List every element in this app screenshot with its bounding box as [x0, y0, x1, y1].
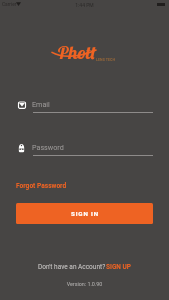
staticText: SIGN UP	[106, 263, 132, 271]
staticText: Forgot Password	[16, 182, 67, 190]
staticText: Don't have an Account?	[38, 263, 106, 271]
button[interactable]: SIGN UP	[106, 263, 132, 271]
other: Email	[18, 100, 26, 110]
other: Password	[18, 143, 25, 153]
staticText: SIGN IN	[71, 210, 99, 217]
staticText: Email	[32, 100, 50, 108]
staticText: Carrier	[2, 2, 17, 8]
staticText: LENS TECH	[96, 58, 116, 62]
staticText: 1:44 PM	[0, 2, 169, 8]
button[interactable]: Forgot Password	[16, 182, 67, 190]
staticText: Password	[32, 143, 64, 151]
staticText: Phott	[57, 40, 96, 63]
staticText: Version: 1.0.90	[0, 281, 169, 287]
button[interactable]: SIGN IN	[16, 203, 153, 224]
